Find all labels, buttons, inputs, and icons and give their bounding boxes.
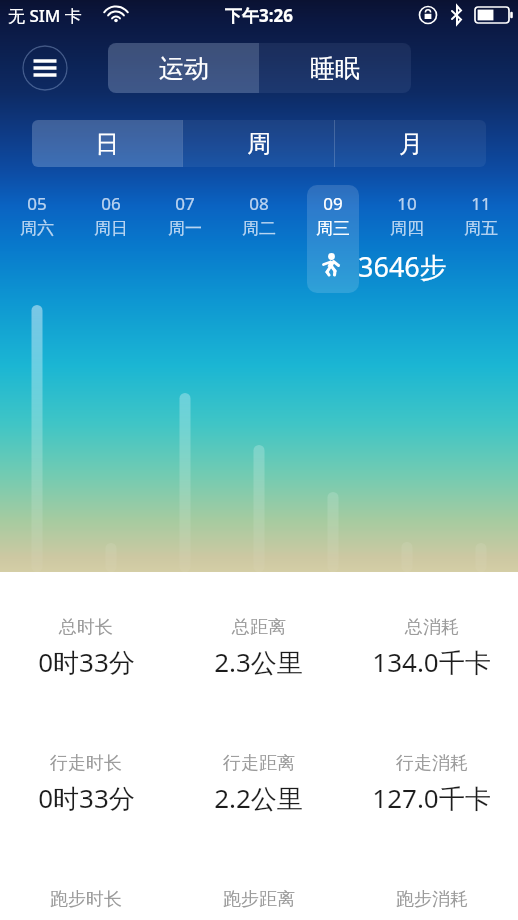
- button[interactable]: 跑步时长: [0, 888, 172, 920]
- staticText: 睡眠: [310, 53, 360, 84]
- staticText: 0时33分: [38, 644, 135, 680]
- button[interactable]: 睡眠: [259, 43, 411, 93]
- button[interactable]: 行走距离: [172, 752, 345, 816]
- staticText: 周五: [464, 218, 498, 239]
- button[interactable]: Menu: [22, 45, 68, 91]
- staticText: 06: [101, 192, 121, 215]
- button[interactable]: 11: [444, 192, 518, 239]
- button[interactable]: 总时长: [0, 616, 172, 680]
- staticText: 10: [397, 192, 417, 215]
- staticText: 周六: [20, 218, 54, 239]
- button[interactable]: 08: [222, 192, 296, 239]
- staticText: 3646步: [358, 248, 447, 284]
- staticText: 2.2公里: [214, 780, 303, 816]
- button[interactable]: 总距离: [172, 616, 345, 680]
- button[interactable]: 跑步距离: [172, 888, 345, 920]
- staticText: 跑步消耗: [396, 888, 468, 911]
- button[interactable]: 06: [74, 192, 148, 239]
- staticText: 跑步距离: [223, 888, 295, 911]
- staticText: 134.0千卡: [372, 644, 491, 680]
- staticText: 总消耗: [405, 616, 459, 639]
- button[interactable]: 周: [183, 120, 334, 167]
- button[interactable]: 运动: [108, 43, 259, 93]
- button[interactable]: 05: [0, 192, 74, 239]
- staticText: 周二: [242, 218, 276, 239]
- staticText: 行走消耗: [396, 752, 468, 775]
- staticText: 日: [95, 129, 119, 159]
- staticText: 0时33分: [38, 780, 135, 816]
- staticText: 09: [323, 192, 343, 215]
- button[interactable]: 10: [370, 192, 444, 239]
- button[interactable]: 09: [296, 192, 370, 239]
- button[interactable]: 07: [148, 192, 222, 239]
- staticText: 无 SIM 卡: [8, 4, 82, 27]
- staticText: 2.3公里: [214, 644, 303, 680]
- staticText: 周四: [390, 218, 424, 239]
- staticText: 11: [471, 192, 491, 215]
- button[interactable]: 行走消耗: [345, 752, 518, 816]
- staticText: 跑步时长: [50, 888, 122, 911]
- staticText: 总距离: [232, 616, 286, 639]
- staticText: 行走距离: [223, 752, 295, 775]
- staticText: 行走时长: [50, 752, 122, 775]
- staticText: 下午3:26: [225, 4, 293, 27]
- staticText: 08: [249, 192, 269, 215]
- staticText: 07: [175, 192, 195, 215]
- staticText: 05: [27, 192, 47, 215]
- staticText: 周一: [168, 218, 202, 239]
- staticText: 周三: [316, 218, 350, 239]
- button[interactable]: 跑步消耗: [345, 888, 518, 920]
- staticText: 127.0千卡: [372, 780, 491, 816]
- staticText: 月: [399, 129, 423, 159]
- staticText: 周日: [94, 218, 128, 239]
- button[interactable]: 月: [335, 120, 486, 167]
- staticText: 周: [247, 129, 271, 159]
- staticText: 总时长: [59, 616, 113, 639]
- button[interactable]: 日: [32, 120, 182, 167]
- staticText: 运动: [159, 53, 209, 84]
- button[interactable]: 行走时长: [0, 752, 172, 816]
- button[interactable]: 总消耗: [345, 616, 518, 680]
